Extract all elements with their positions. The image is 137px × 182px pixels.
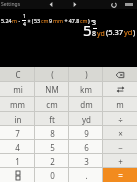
button[interactable]: .: [69, 168, 103, 182]
staticText: 1: [15, 156, 20, 167]
staticText: ÷: [118, 114, 123, 125]
button[interactable]: 5: [35, 140, 69, 154]
staticText: .: [85, 170, 88, 181]
button[interactable]: m: [103, 97, 137, 112]
button[interactable]: km: [69, 82, 103, 97]
staticText: NM: [45, 84, 59, 95]
staticText: 9: [84, 128, 89, 139]
staticText: 3: [92, 18, 97, 28]
staticText: 7: [15, 128, 20, 139]
staticText: 4: [15, 142, 20, 153]
staticText: + 47.8: [63, 17, 80, 24]
staticText: C: [15, 69, 21, 80]
staticText: ) =: [88, 17, 94, 24]
button[interactable]: in: [0, 112, 35, 126]
staticText: -: [17, 17, 22, 24]
button[interactable]: −: [103, 140, 137, 154]
button[interactable]: ft: [35, 112, 69, 126]
button[interactable]: 3: [69, 154, 103, 168]
staticText: cm: [46, 99, 58, 110]
staticText: m: [12, 17, 17, 24]
staticText: dm: [80, 99, 93, 110]
staticText: 4: [23, 21, 26, 28]
staticText: 1: [23, 13, 26, 20]
staticText: mm: [10, 99, 25, 110]
staticText: ): [133, 27, 136, 37]
staticText: +: [118, 156, 123, 167]
staticText: −: [118, 142, 123, 153]
button[interactable]: +: [103, 154, 137, 168]
staticText: yd: [97, 29, 105, 39]
staticText: mi: [13, 84, 23, 95]
staticText: 0: [50, 170, 55, 181]
staticText: =: [118, 170, 123, 181]
button[interactable]: 2: [35, 154, 69, 168]
staticText: 8: [92, 29, 97, 39]
staticText: cm: [41, 17, 49, 24]
staticText: ft: [49, 114, 55, 125]
staticText: km: [80, 84, 92, 95]
staticText: 6: [84, 142, 89, 153]
staticText: 53: [34, 17, 41, 24]
staticText: yd: [82, 114, 91, 125]
button[interactable]: ×: [103, 126, 137, 140]
button[interactable]: 7: [0, 126, 35, 140]
staticText: 8: [50, 128, 55, 139]
button[interactable]: =: [103, 168, 137, 182]
staticText: (5.37: [106, 27, 124, 37]
staticText: × (: [26, 17, 34, 24]
button[interactable]: C: [0, 67, 35, 82]
staticText: yd: [124, 27, 133, 37]
button[interactable]: (: [35, 67, 69, 82]
button[interactable]: 0: [35, 168, 69, 182]
staticText: 5: [83, 20, 92, 40]
button[interactable]: Swap units: [103, 82, 137, 97]
staticText: 2: [50, 156, 55, 167]
button[interactable]: Settings: [1, 1, 21, 8]
staticText: (: [51, 69, 54, 80]
button[interactable]: ÷: [103, 112, 137, 126]
staticText: 9: [49, 17, 53, 24]
staticText: ): [85, 69, 88, 80]
button[interactable]: 8: [35, 126, 69, 140]
button[interactable]: NM: [35, 82, 69, 97]
button[interactable]: 1: [0, 154, 35, 168]
staticText: m: [116, 99, 124, 110]
button[interactable]: Menu: [123, 0, 135, 9]
button[interactable]: 6: [69, 140, 103, 154]
button[interactable]: Fraction: [0, 168, 35, 182]
button[interactable]: mm: [0, 97, 35, 112]
button[interactable]: ): [69, 67, 103, 82]
staticText: ×: [118, 128, 123, 139]
button[interactable]: yd: [69, 112, 103, 126]
button[interactable]: cm: [35, 97, 69, 112]
button[interactable]: Previous: [46, 0, 56, 9]
staticText: cm: [80, 17, 88, 24]
staticText: 5.24: [1, 17, 12, 24]
button[interactable]: dm: [69, 97, 103, 112]
staticText: in: [14, 114, 22, 125]
staticText: 5: [50, 142, 55, 153]
button[interactable]: 4: [0, 140, 35, 154]
button[interactable]: Backspace: [103, 67, 137, 82]
button[interactable]: 9: [69, 126, 103, 140]
button[interactable]: mi: [0, 82, 35, 97]
button[interactable]: Undo: [109, 0, 119, 9]
staticText: mm: [53, 17, 63, 24]
button[interactable]: Next: [70, 0, 80, 9]
staticText: 3: [84, 156, 89, 167]
